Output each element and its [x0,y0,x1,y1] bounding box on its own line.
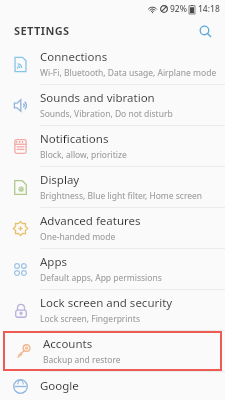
button[interactable]: Lock screen and security [0,290,225,330]
staticText: Wi-Fi, Bluetooth, Data usage, Airplane m… [40,67,217,79]
button[interactable]: Sounds and vibration [0,85,225,125]
staticText: Brightness, Blue light filter, Home scre… [40,190,203,202]
staticText: Sounds and vibration [40,90,155,106]
button[interactable]: Accounts [3,331,222,371]
button[interactable]: Display [0,167,225,207]
button[interactable]: Advanced features [0,208,225,248]
staticText: 92% [170,3,187,15]
staticText: Notifications [40,131,109,147]
staticText: Default apps, App permissions [40,272,162,284]
button[interactable]: Connections [0,44,225,84]
staticText: SETTINGS [14,23,70,38]
staticText: Connections [40,49,108,65]
staticText: Lock screen, Fingerprints [40,313,140,325]
button[interactable]: Apps [0,249,225,289]
staticText: Apps [40,254,68,270]
button[interactable]: Search [194,20,216,42]
staticText: Google [40,378,79,394]
staticText: Display [40,172,80,188]
staticText: Advanced features [40,213,141,229]
staticText: 14:18 [198,3,220,15]
button[interactable]: Notifications [0,126,225,166]
staticText: Sounds, Vibration, Do not disturb [40,108,173,120]
staticText: One-handed mode [40,231,116,243]
staticText: Accounts [43,336,93,352]
staticText: Lock screen and security [40,295,173,311]
staticText: Backup and restore [43,354,121,366]
button[interactable]: Google [0,372,225,400]
staticText: Block, allow, prioritize [40,149,127,161]
